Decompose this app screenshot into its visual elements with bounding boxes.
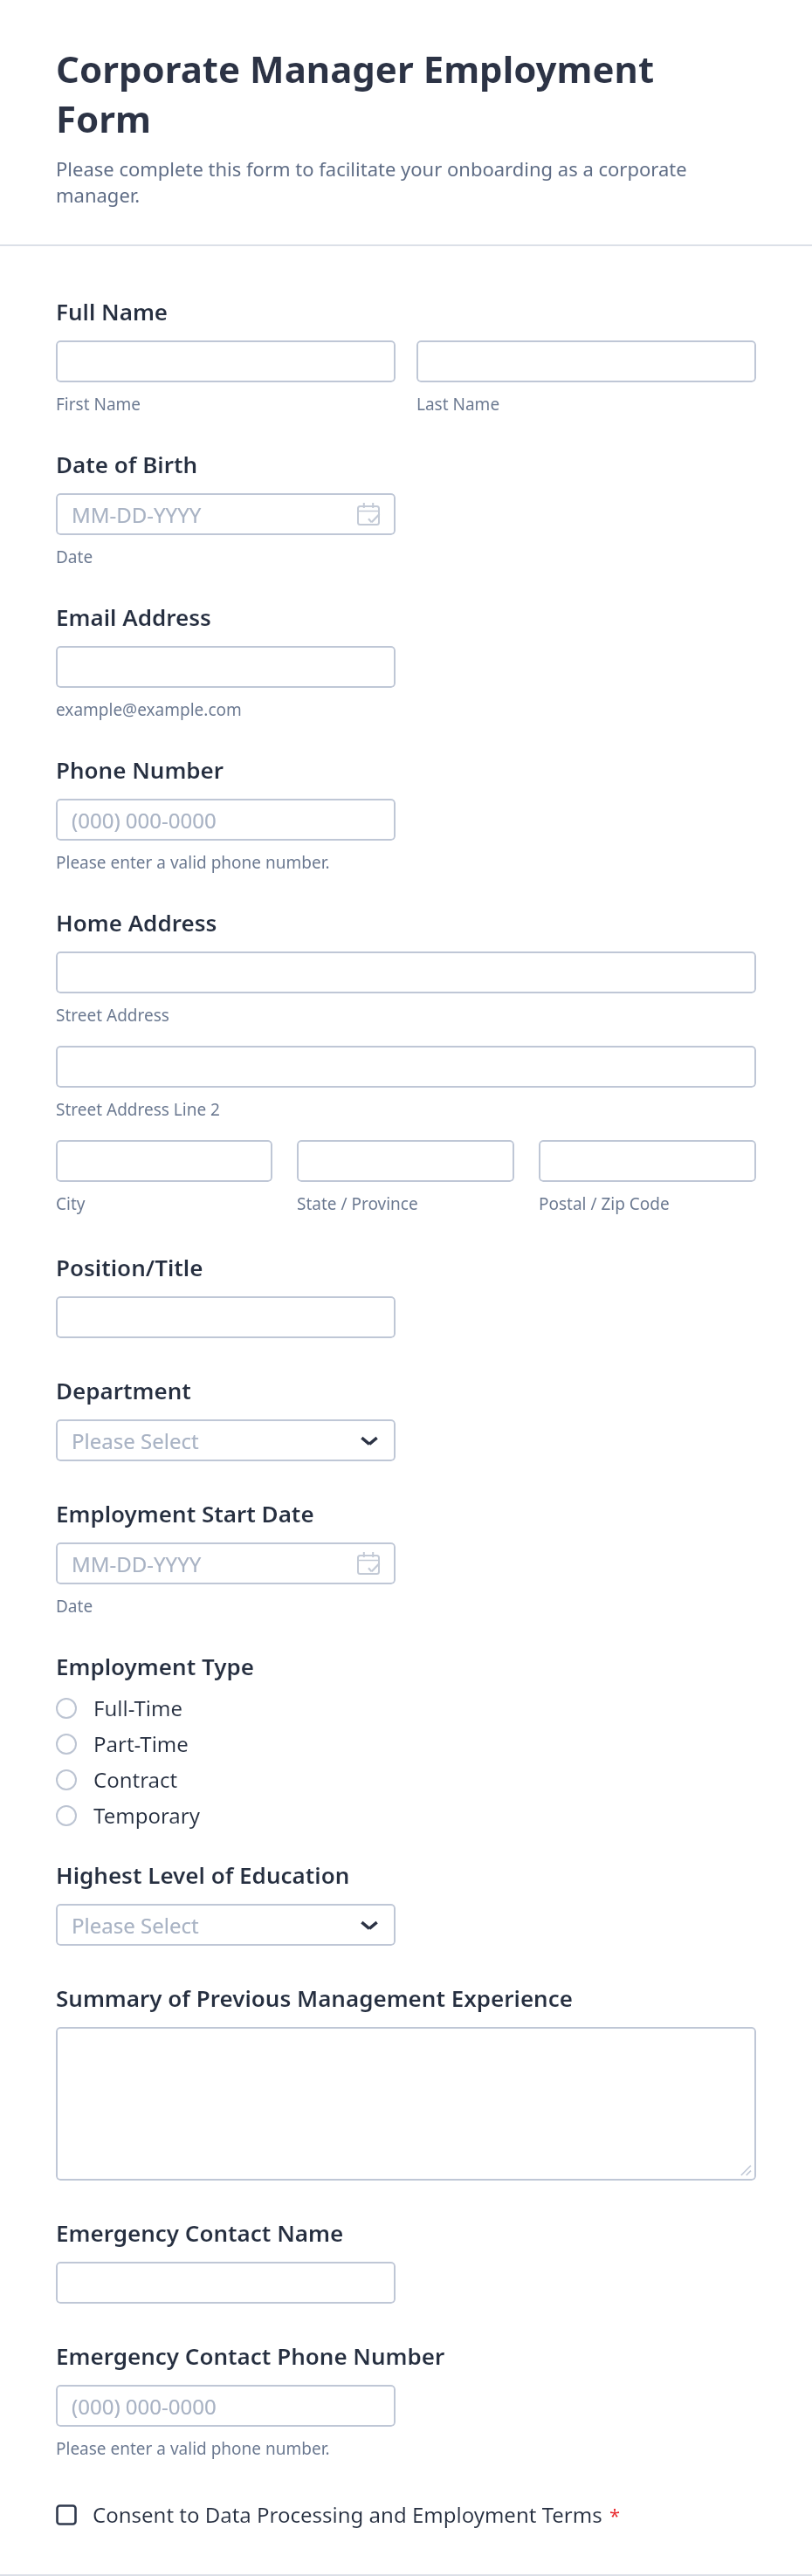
staticText: Street Address — [56, 1004, 169, 1027]
staticText: Please complete this form to facilitate … — [56, 155, 756, 208]
button[interactable] — [56, 1046, 756, 1088]
staticText: Please enter a valid phone number. — [56, 851, 330, 874]
staticText: Please Select — [72, 1426, 199, 1455]
staticText: Corporate Manager Employment Form — [56, 44, 756, 143]
button[interactable] — [56, 2262, 396, 2304]
button[interactable] — [416, 340, 756, 382]
staticText: Email Address — [56, 601, 211, 632]
button[interactable] — [56, 2027, 756, 2181]
staticText: Full-Time — [93, 1693, 182, 1722]
staticText: MM-DD-YYYY — [72, 1549, 202, 1578]
button[interactable]: Temporary — [56, 1797, 756, 1833]
staticText: MM-DD-YYYY — [72, 500, 202, 529]
other: Pick a date — [357, 503, 380, 526]
staticText: example@example.com — [56, 698, 242, 721]
staticText: Please enter a valid phone number. — [56, 2437, 330, 2460]
staticText: Date — [56, 546, 93, 568]
staticText: Date — [56, 1595, 93, 1618]
button[interactable]: Part-Time — [56, 1726, 756, 1762]
staticText: Please Select — [72, 1911, 199, 1940]
other: Open dropdown — [359, 1430, 380, 1451]
button[interactable] — [56, 340, 396, 382]
button[interactable]: MM-DD-YYYY — [56, 1542, 396, 1584]
button[interactable] — [56, 646, 396, 688]
staticText: State / Province — [297, 1192, 418, 1215]
staticText: City — [56, 1192, 86, 1215]
staticText: Department — [56, 1375, 191, 1405]
staticText: Highest Level of Education — [56, 1859, 350, 1890]
staticText: Emergency Contact Phone Number — [56, 2340, 445, 2371]
staticText: (000) 000-0000 — [72, 806, 217, 835]
button[interactable] — [56, 1140, 272, 1182]
staticText: Phone Number — [56, 754, 224, 785]
staticText: Postal / Zip Code — [539, 1192, 670, 1215]
staticText: (000) 000-0000 — [72, 2392, 217, 2421]
button[interactable]: Consent to Data Processing and Employmen… — [56, 2500, 621, 2529]
button[interactable] — [56, 951, 756, 993]
staticText: First Name — [56, 393, 141, 416]
button[interactable] — [56, 1296, 396, 1338]
button[interactable]: MM-DD-YYYY — [56, 493, 396, 535]
staticText: Date of Birth — [56, 449, 198, 479]
staticText: Contract — [93, 1765, 178, 1794]
staticText: Home Address — [56, 907, 217, 938]
staticText: Employment Start Date — [56, 1498, 314, 1528]
staticText: Emergency Contact Name — [56, 2217, 344, 2248]
staticText: Temporary — [93, 1801, 200, 1830]
staticText: Full Name — [56, 296, 169, 326]
staticText: Part-Time — [93, 1729, 189, 1758]
button[interactable]: Contract — [56, 1762, 756, 1797]
staticText: Employment Type — [56, 1651, 254, 1681]
other: Open dropdown — [359, 1914, 380, 1935]
button[interactable]: Please Select — [56, 1904, 396, 1946]
button[interactable] — [539, 1140, 756, 1182]
button[interactable]: (000) 000-0000 — [56, 2385, 396, 2427]
staticText: * — [609, 2502, 621, 2528]
button[interactable]: (000) 000-0000 — [56, 799, 396, 841]
staticText: Position/Title — [56, 1252, 203, 1282]
staticText: Summary of Previous Management Experienc… — [56, 1982, 573, 2013]
other: Pick a date — [357, 1552, 380, 1575]
button[interactable] — [297, 1140, 514, 1182]
button[interactable]: Full-Time — [56, 1690, 756, 1726]
button[interactable]: Please Select — [56, 1419, 396, 1461]
staticText: Consent to Data Processing and Employmen… — [93, 2500, 602, 2529]
staticText: Street Address Line 2 — [56, 1098, 220, 1121]
staticText: Last Name — [416, 393, 500, 416]
